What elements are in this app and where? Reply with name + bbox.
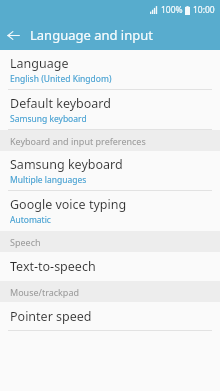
staticText: Mouse/trackpad bbox=[10, 286, 79, 298]
button[interactable]: Google voice typing bbox=[0, 191, 220, 231]
staticText: 100% bbox=[161, 4, 183, 16]
staticText: 10:00 bbox=[193, 4, 215, 16]
staticText: Multiple languages bbox=[10, 174, 87, 186]
button[interactable]: Back bbox=[0, 22, 26, 48]
staticText: Text-to-speech bbox=[10, 258, 96, 275]
staticText: Speech bbox=[10, 236, 41, 248]
staticText: Samsung keyboard bbox=[10, 156, 123, 173]
staticText: Language and input bbox=[30, 26, 153, 44]
button[interactable]: Default keyboard bbox=[0, 90, 220, 130]
staticText: Samsung keyboard bbox=[10, 113, 87, 125]
button[interactable]: Language bbox=[0, 50, 220, 90]
staticText: Google voice typing bbox=[10, 196, 127, 213]
staticText: Default keyboard bbox=[10, 95, 111, 112]
staticText: Language bbox=[10, 55, 69, 72]
button[interactable]: Samsung keyboard bbox=[0, 151, 220, 191]
staticText: English (United Kingdom) bbox=[10, 73, 112, 85]
button[interactable]: Pointer speed bbox=[0, 302, 220, 331]
staticText: Automatic bbox=[10, 214, 51, 226]
button[interactable]: Text-to-speech bbox=[0, 252, 220, 281]
staticText: Pointer speed bbox=[10, 308, 92, 325]
staticText: Keyboard and input preferences bbox=[10, 135, 146, 147]
